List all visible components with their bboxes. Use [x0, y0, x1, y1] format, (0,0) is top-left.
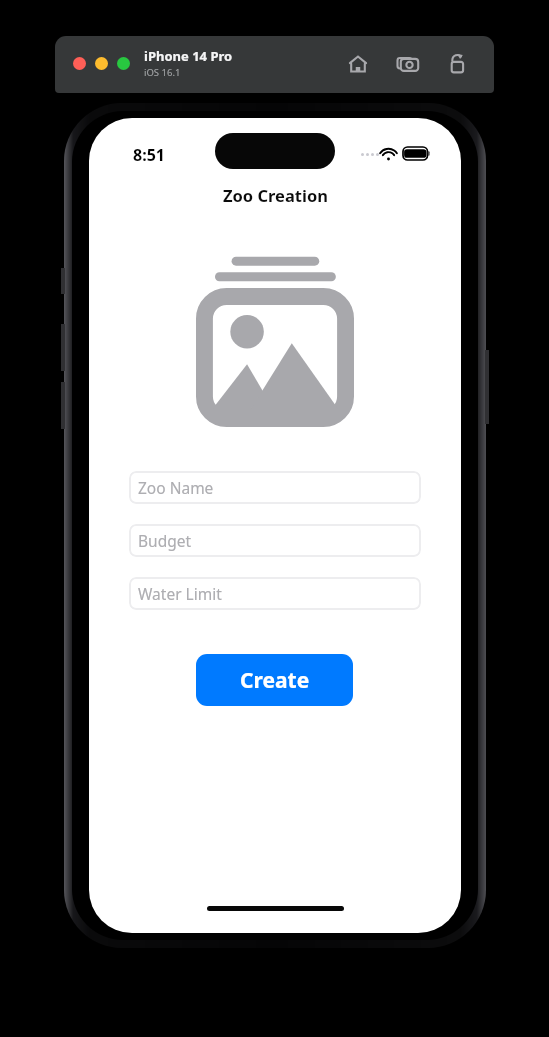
staticText: Water Limit [138, 583, 222, 604]
button[interactable]: Create [196, 654, 353, 706]
button[interactable]: Rotate [443, 49, 473, 79]
button[interactable]: Water Limit [129, 577, 421, 610]
button[interactable]: Maximize [117, 57, 130, 70]
button[interactable]: Select zoo image [196, 255, 354, 427]
staticText: iOS 16.1 [144, 66, 181, 79]
staticText: Zoo Name [138, 477, 214, 498]
button[interactable]: Close [73, 57, 86, 70]
button[interactable]: Screenshot [393, 49, 423, 79]
staticText: 8:51 [133, 144, 165, 166]
staticText: iPhone 14 Pro [144, 47, 233, 65]
staticText: Budget [138, 530, 192, 551]
staticText: Create [240, 666, 310, 695]
button[interactable]: Home [343, 49, 373, 79]
button[interactable]: Budget [129, 524, 421, 557]
staticText: Zoo Creation [223, 184, 328, 206]
button[interactable]: Minimize [95, 57, 108, 70]
button[interactable]: Zoo Name [129, 471, 421, 504]
